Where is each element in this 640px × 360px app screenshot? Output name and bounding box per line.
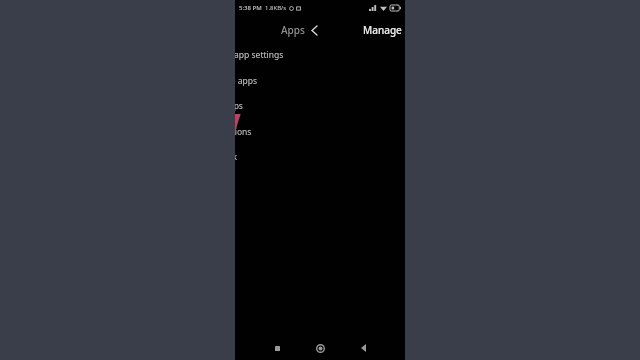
button[interactable]: Permissions	[235, 119, 405, 144]
staticText: Manage apps	[363, 23, 405, 37]
staticText: Apps	[281, 23, 305, 37]
button[interactable]: Home	[311, 339, 329, 357]
button[interactable]: Recent apps	[268, 339, 286, 357]
button[interactable]: App lock	[235, 144, 405, 169]
button[interactable]: Dual apps	[235, 93, 405, 118]
staticText: Dual apps	[235, 100, 243, 112]
button[interactable]: Back	[354, 339, 372, 357]
staticText: App lock	[235, 151, 238, 163]
button[interactable]: Back	[306, 22, 322, 38]
staticText: 5:38 PM	[239, 4, 262, 12]
staticText: 1.8KB/s	[265, 4, 287, 12]
button[interactable]: Manage apps	[235, 68, 405, 93]
staticText: Permissions	[235, 126, 252, 138]
staticText: Manage apps	[235, 75, 258, 87]
button[interactable]: System app settings	[235, 42, 405, 67]
staticText: System app settings	[235, 49, 284, 61]
